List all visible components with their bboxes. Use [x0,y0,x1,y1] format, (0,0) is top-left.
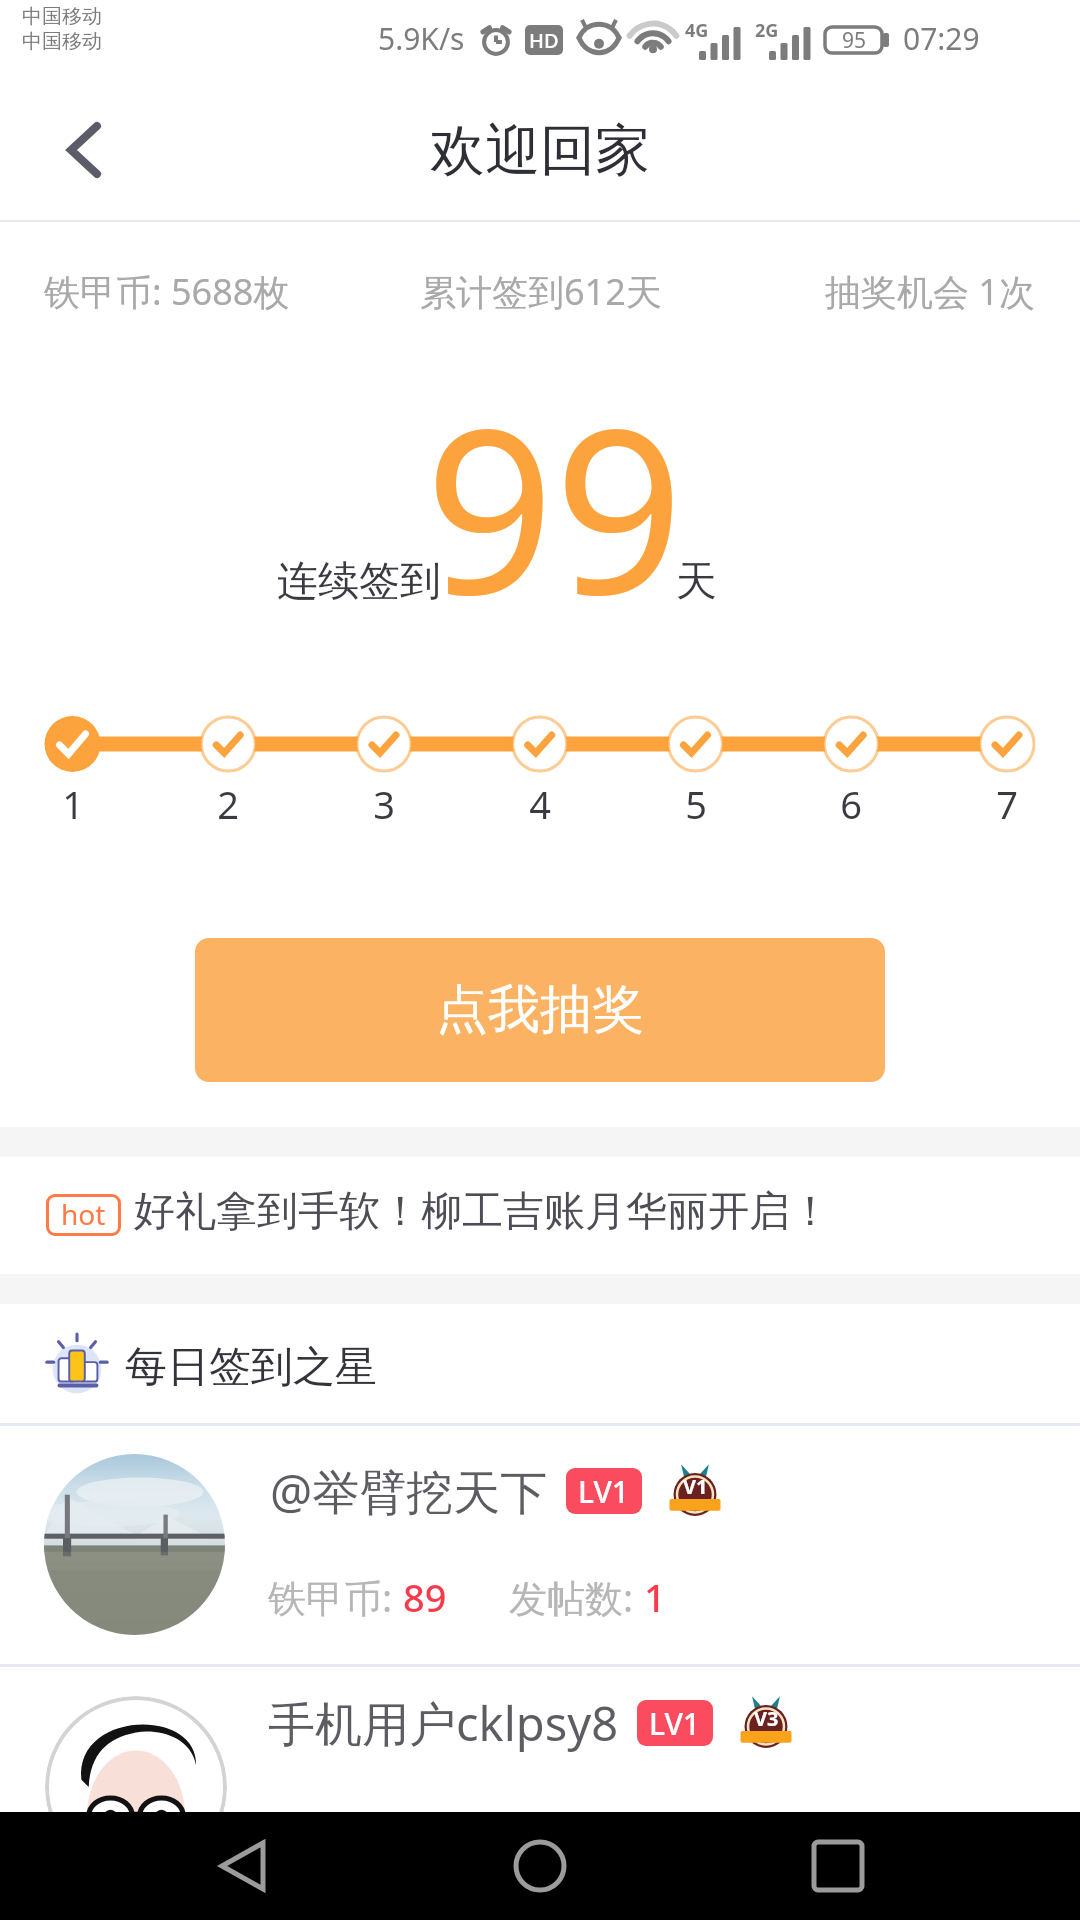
staticText: 6 [840,778,862,830]
staticText: 4G [685,18,709,43]
staticText: 累计签到612天 [420,267,662,316]
button[interactable]: 手机用户cklpsy8 [0,1667,1080,1905]
staticText: 89 [403,1571,447,1623]
staticText: 4 [529,778,551,830]
staticText: 95 [842,26,867,55]
button[interactable]: Back [188,1812,298,1920]
staticText: 中国移动 [22,4,102,29]
staticText: 连续签到 [277,556,441,608]
button[interactable]: 点我抽奖 [195,938,885,1082]
staticText: @举臂挖天下 [270,1459,548,1523]
button[interactable]: Home [485,1812,595,1920]
staticText: LV1 [578,1471,630,1512]
staticText: V1 [683,1473,708,1500]
button[interactable]: hot [0,1157,1080,1274]
staticText: 1 [644,1571,666,1623]
staticText: 手机用户cklpsy8 [268,1691,619,1755]
staticText: LV1 [649,1703,701,1744]
staticText: 发帖数: [509,1571,644,1623]
staticText: 3 [373,778,395,830]
staticText: 抽奖机会 1次 [825,267,1035,316]
staticText: 天 [676,556,717,608]
staticText: 5.9K/s [378,18,465,59]
staticText: 每日签到之星 [125,1341,377,1394]
staticText: 2 [217,778,239,830]
staticText: 07:29 [903,18,980,59]
staticText: 铁甲币: [268,1571,403,1623]
staticText: 铁甲币: 5688枚 [44,267,290,316]
staticText: hot [61,1195,106,1233]
button[interactable]: Back [24,90,144,210]
staticText: 5 [685,778,707,830]
staticText: 7 [996,778,1018,830]
staticText: 中国移动 [22,29,102,54]
staticText: 1 [62,778,84,830]
button[interactable]: @举臂挖天下 [0,1426,1080,1664]
staticText: HD [529,27,559,54]
staticText: 欢迎回家 [430,116,650,185]
button[interactable]: Recents [783,1812,893,1920]
staticText: V3 [754,1705,779,1732]
staticText: 2G [755,18,779,43]
staticText: 99 [425,352,684,652]
staticText: 点我抽奖 [436,977,644,1043]
staticText: 好礼拿到手软！柳工吉账月华丽开启！ [134,1186,831,1238]
